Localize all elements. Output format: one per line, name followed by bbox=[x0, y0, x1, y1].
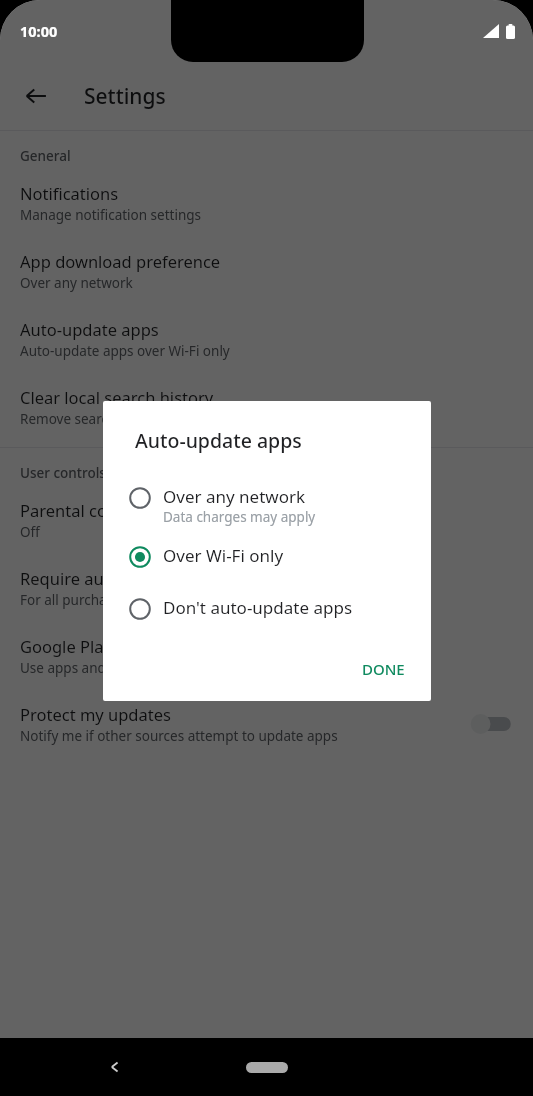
button[interactable]: App download preference bbox=[0, 237, 533, 305]
button[interactable]: Auto-update apps bbox=[0, 305, 533, 373]
staticText: Clear local search history bbox=[20, 386, 214, 408]
button[interactable]: Notifications bbox=[0, 169, 533, 237]
staticText: Settings bbox=[84, 82, 166, 111]
staticText: Require authentication for purchases bbox=[20, 567, 308, 589]
button[interactable]: Over Wi-Fi only bbox=[103, 535, 431, 577]
staticText: Don't auto-update apps bbox=[163, 596, 353, 619]
staticText: Off bbox=[20, 523, 40, 541]
staticText: Notify me if other sources attempt to up… bbox=[20, 727, 338, 745]
staticText: Manage notification settings bbox=[20, 206, 202, 224]
staticText: Over any network bbox=[163, 485, 306, 508]
staticText: Use apps and games without installation bbox=[20, 659, 278, 677]
staticText: General bbox=[20, 147, 71, 165]
button[interactable]: Clear local search history bbox=[0, 373, 533, 441]
button[interactable]: Home bbox=[232, 1052, 302, 1082]
staticText: App download preference bbox=[20, 250, 221, 272]
staticText: Notifications bbox=[20, 182, 119, 204]
staticText: 10:00 bbox=[20, 21, 58, 41]
button[interactable]: Parental controls bbox=[0, 486, 533, 554]
button[interactable]: Over any network bbox=[103, 476, 431, 535]
staticText: For all purchases through Google Play on… bbox=[20, 591, 352, 609]
staticText: Remove searches you have performed on th… bbox=[20, 410, 354, 428]
staticText: Auto-update apps over Wi-Fi only bbox=[20, 342, 230, 360]
staticText: Google Play Instant bbox=[20, 635, 172, 657]
button[interactable]: Require authentication for purchases bbox=[0, 554, 533, 622]
button[interactable]: Protect my updates bbox=[0, 690, 533, 758]
button[interactable]: Back bbox=[94, 1046, 136, 1088]
button[interactable]: Don't auto-update apps bbox=[103, 587, 431, 629]
button[interactable]: Back bbox=[14, 74, 58, 118]
button[interactable]: Google Play Instant bbox=[0, 622, 533, 690]
staticText: Over Wi-Fi only bbox=[163, 544, 284, 567]
staticText: Over any network bbox=[20, 274, 133, 292]
button[interactable]: DONE bbox=[350, 649, 417, 689]
button[interactable]: Toggle protect my updates bbox=[465, 709, 517, 739]
staticText: Auto-update apps bbox=[20, 318, 159, 340]
staticText: Auto-update apps bbox=[135, 427, 302, 454]
staticText: User controls bbox=[20, 464, 106, 482]
staticText: Data charges may apply bbox=[163, 508, 316, 526]
staticText: DONE bbox=[362, 659, 405, 679]
staticText: Parental controls bbox=[20, 499, 152, 521]
staticText: Protect my updates bbox=[20, 703, 171, 725]
